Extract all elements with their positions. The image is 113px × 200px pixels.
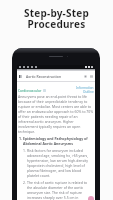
staticText: Step-by-Step Procedures: [24, 6, 89, 31]
staticText: Cardiovascular: [18, 88, 42, 92]
staticText: Aneurysms pose an end-point threat to li…: [18, 94, 94, 134]
staticText: Epidemiology and Pathophysiology of Abdo…: [23, 136, 88, 146]
button[interactable]: Information: [76, 86, 94, 90]
staticText: 1.: [19, 136, 22, 141]
staticText: 2.: [23, 180, 26, 185]
button[interactable]: Bookmark: [83, 74, 88, 79]
button[interactable]: Open library: [18, 74, 23, 79]
staticText: Aortic Reconstruction: [26, 74, 62, 79]
staticText: 1.: [23, 148, 26, 153]
staticText: The risk of aortic rupture is related to…: [27, 180, 93, 200]
button[interactable]: More options: [89, 74, 94, 79]
staticText: Risk factors for aneurysm included advan…: [27, 148, 93, 178]
button[interactable]: Add note: [88, 196, 94, 200]
button[interactable]: Outline: [83, 90, 94, 94]
